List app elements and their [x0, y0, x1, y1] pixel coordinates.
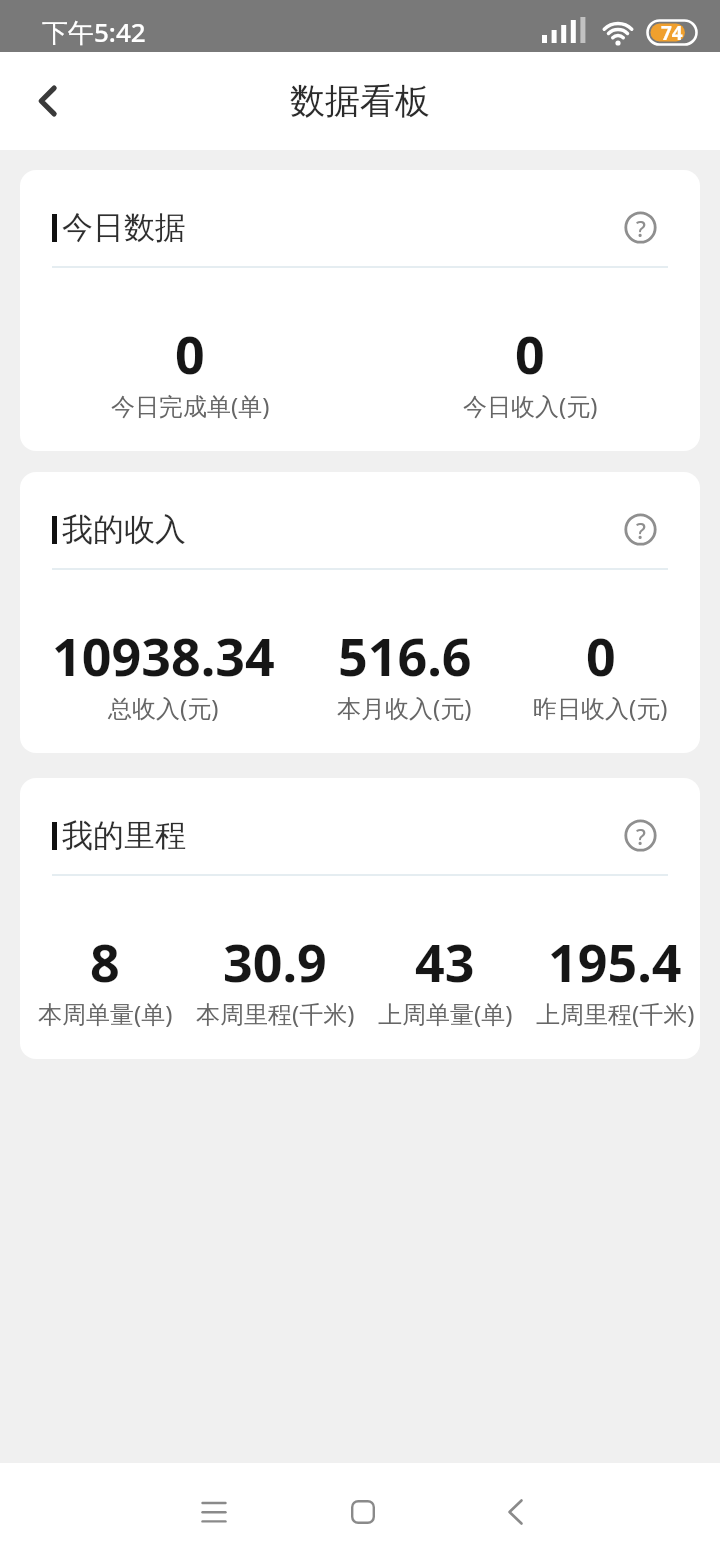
staticText: 上周单量(单) [378, 997, 513, 1030]
staticText: 195.4 [548, 926, 682, 997]
staticText: 昨日收入(元) [533, 691, 668, 724]
staticText: 516.6 [338, 620, 472, 691]
staticText: 74 [661, 20, 683, 46]
staticText: 我的收入 [62, 510, 186, 549]
staticText: 本月收入(元) [337, 691, 472, 724]
staticText: 总收入(元) [108, 691, 219, 724]
staticText: 今日完成单(单) [111, 389, 270, 422]
staticText: 30.9 [223, 926, 327, 997]
staticText: 10938.34 [52, 620, 275, 691]
staticText: 43 [415, 926, 475, 997]
staticText: 下午5:42 [42, 14, 146, 50]
button[interactable] [190, 1488, 238, 1536]
button[interactable] [339, 1488, 387, 1536]
staticText: ? [636, 213, 646, 243]
staticText: 我的里程 [62, 816, 186, 855]
staticText: ? [636, 821, 646, 851]
staticText: 0 [515, 318, 545, 389]
staticText: 上周里程(千米) [536, 997, 695, 1030]
staticText: 本周单量(单) [38, 997, 173, 1030]
button[interactable] [491, 1488, 539, 1536]
staticText: 今日收入(元) [463, 389, 598, 422]
staticText: 8 [90, 926, 120, 997]
staticText: 0 [175, 318, 205, 389]
staticText: 数据看板 [290, 79, 430, 123]
staticText: 0 [586, 620, 616, 691]
button[interactable]: ? [624, 513, 657, 546]
button[interactable] [24, 77, 72, 125]
staticText: 今日数据 [62, 208, 186, 247]
button[interactable]: ? [624, 211, 657, 244]
staticText: 本周里程(千米) [196, 997, 355, 1030]
button[interactable]: ? [624, 819, 657, 852]
staticText: ? [636, 515, 646, 545]
